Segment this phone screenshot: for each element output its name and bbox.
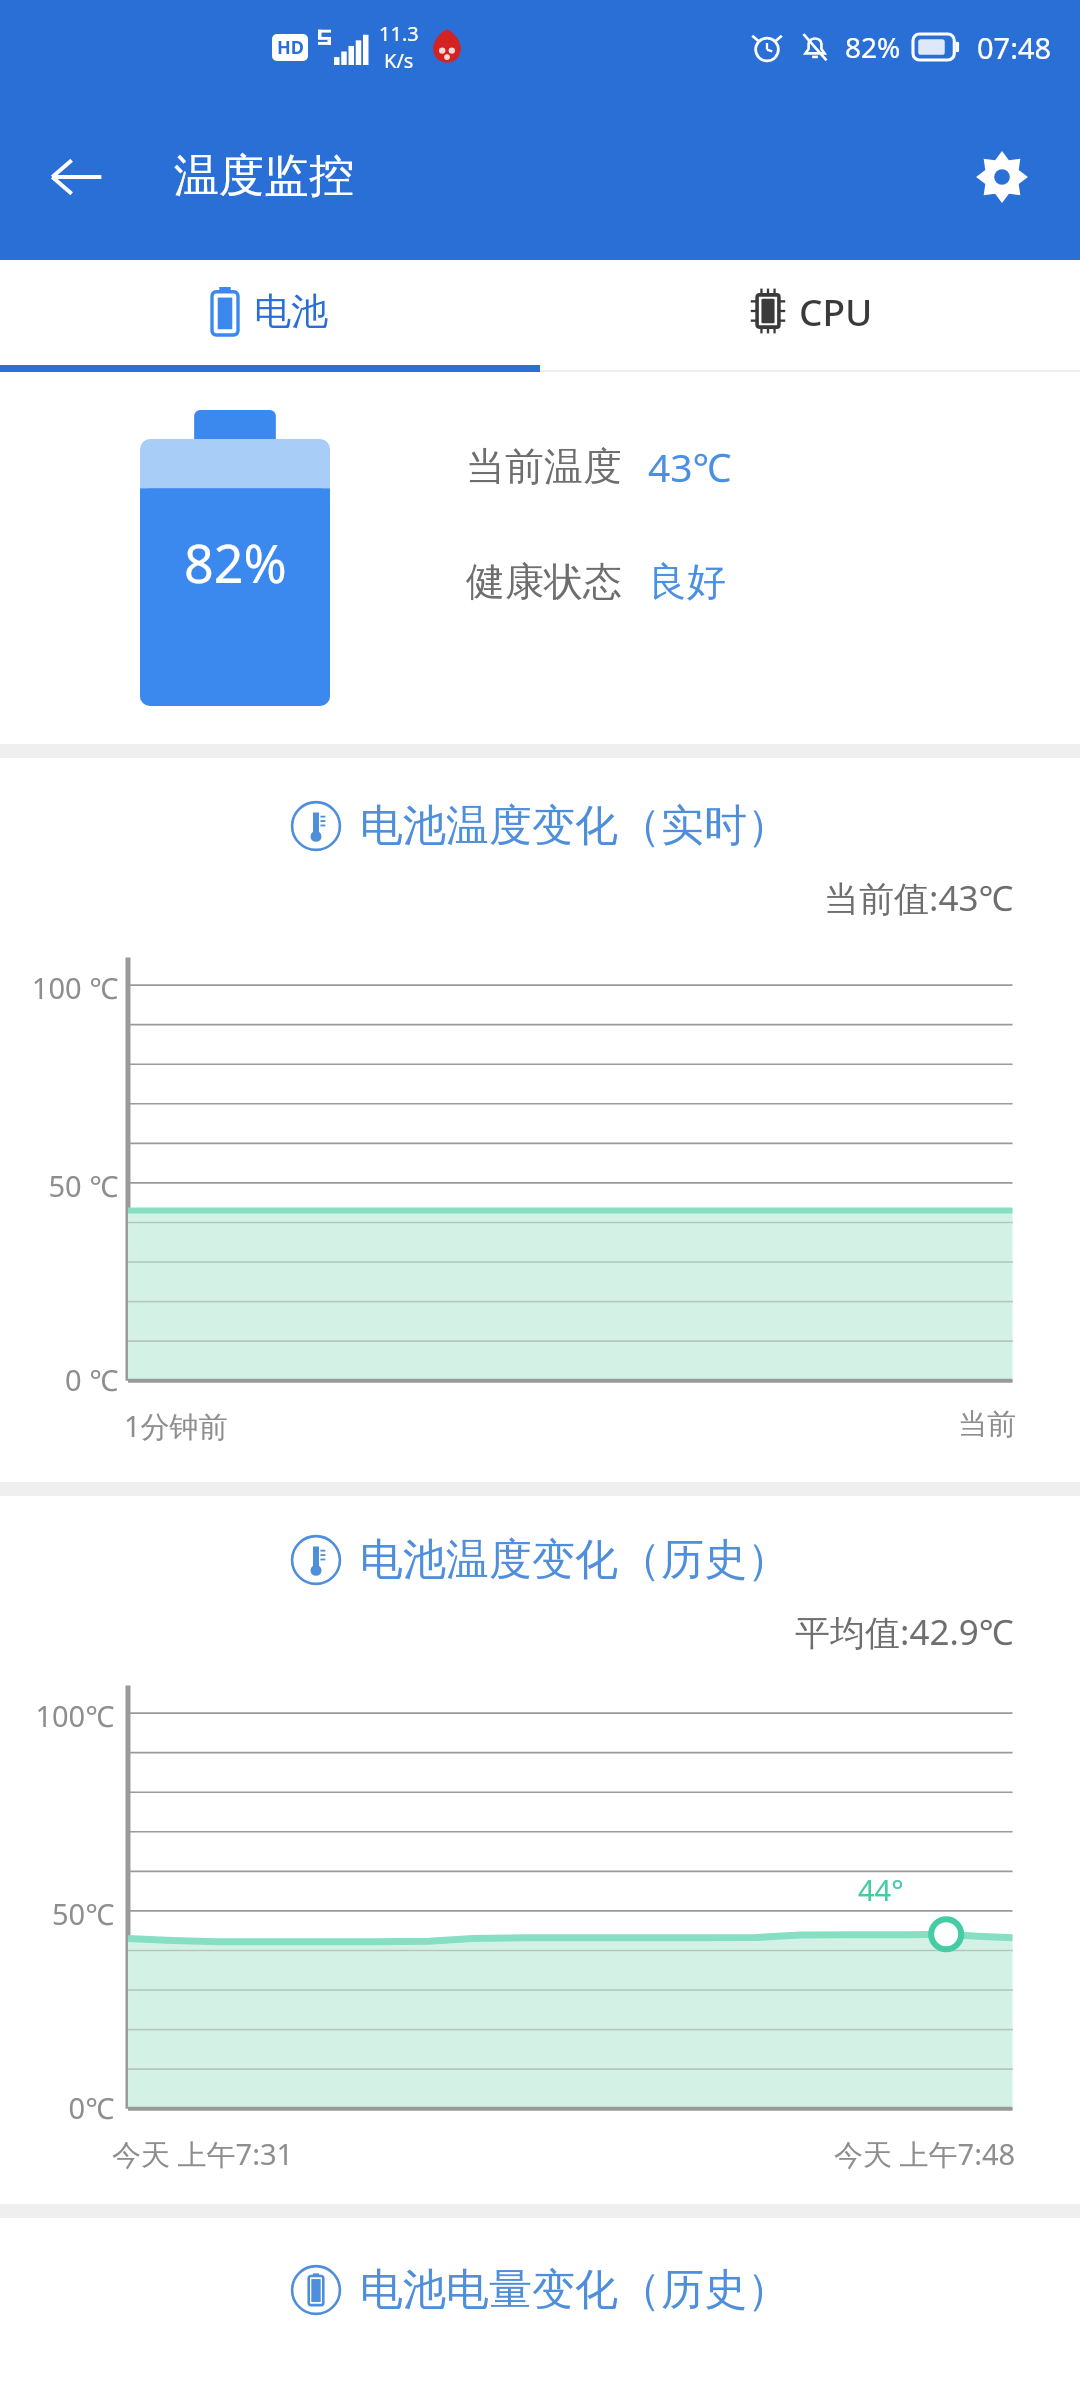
staticText: 电池电量变化（历史） [360,2263,790,2317]
staticText: 今天 上午7:31 [112,2134,294,2174]
staticText: 温度监控 [174,148,354,205]
button[interactable]: Settings [958,133,1046,221]
staticText: HD [277,35,304,60]
staticText: 50 ℃ [14,1166,118,1205]
staticText: 100 ℃ [14,968,118,1007]
staticText: 1分钟前 [124,1406,228,1446]
staticText: 07:48 [977,28,1052,67]
staticText: 电池温度变化（实时） [360,799,790,853]
staticText: 43℃ [648,440,732,493]
staticText: 100℃ [18,1696,114,1735]
staticText: 11.3 [379,20,419,47]
staticText: 电池 [254,288,328,335]
staticText: 0 ℃ [14,1360,118,1399]
staticText: 当前温度 [466,442,622,491]
staticText: 44° [858,1870,904,1909]
staticText: 82% [845,28,901,66]
button[interactable]: 电池 [0,260,540,372]
staticText: 电池温度变化（历史） [360,1533,790,1587]
staticText: 50℃ [18,1894,114,1933]
staticText: 良好 [648,557,726,606]
staticText: 当前 [958,1406,1016,1443]
staticText: 当前值:43℃ [824,874,1014,922]
staticText: 健康状态 [466,557,622,606]
staticText: CPU [799,286,873,336]
staticText: 今天 上午7:48 [834,2134,1016,2174]
staticText: 平均值:42.9℃ [795,1608,1014,1656]
button[interactable]: CPU [540,260,1080,372]
staticText: K/s [384,47,414,74]
staticText: 0℃ [18,2088,114,2127]
staticText: 82% [184,527,287,598]
button[interactable]: Back [32,133,120,221]
